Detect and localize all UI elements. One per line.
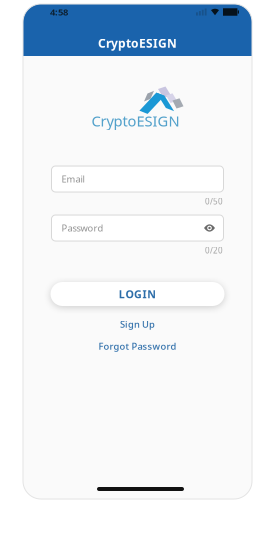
- button[interactable]: LOGIN: [50, 282, 224, 306]
- staticText: CryptoESIGN: [91, 111, 179, 130]
- staticText: 4:58: [50, 6, 68, 18]
- button[interactable]: Forgot Password: [98, 340, 176, 352]
- staticText: LOGIN: [119, 287, 156, 301]
- staticText: Email: [61, 173, 84, 185]
- button[interactable]: Sign Up: [120, 318, 155, 330]
- button[interactable]: Show password: [203, 223, 223, 233]
- staticText: 0/20: [205, 245, 223, 256]
- staticText: Sign Up: [120, 318, 155, 330]
- staticText: Forgot Password: [98, 340, 176, 352]
- staticText: Password: [61, 222, 103, 234]
- staticText: 0/50: [205, 196, 223, 207]
- staticText: CryptoESIGN: [98, 35, 177, 51]
